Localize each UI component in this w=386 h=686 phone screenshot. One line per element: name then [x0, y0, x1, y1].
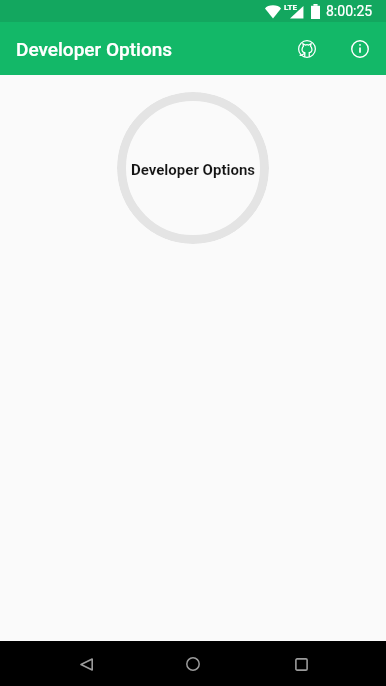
staticText: Developer Options: [16, 38, 173, 60]
staticText: 8:00:25: [326, 3, 373, 19]
button[interactable]: Home: [171, 642, 215, 686]
button[interactable]: About: [338, 27, 382, 71]
staticText: Developer Options: [131, 161, 256, 179]
staticText: LTE: [284, 3, 297, 12]
button[interactable]: Recent apps: [279, 642, 323, 686]
button[interactable]: Back: [64, 642, 108, 686]
button[interactable]: Developer Options: [117, 92, 269, 244]
button[interactable]: GitHub repository: [285, 27, 329, 71]
